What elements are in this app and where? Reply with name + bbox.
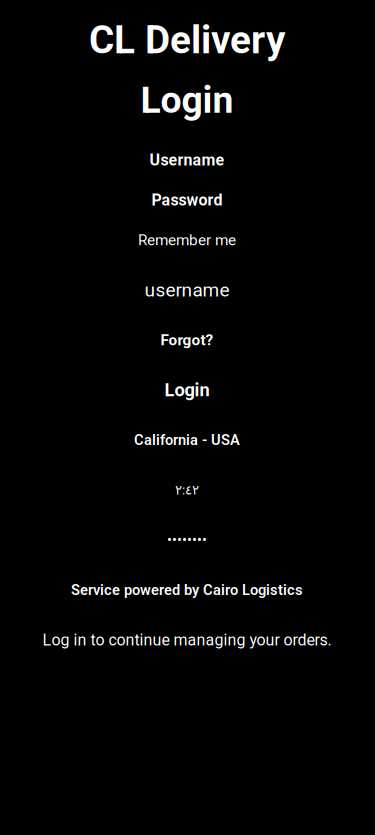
staticText: Login <box>140 78 233 122</box>
staticText: Forgot? <box>160 331 213 349</box>
staticText: Username <box>149 151 224 169</box>
staticText: CL Delivery <box>89 17 285 63</box>
staticText: •••••••• <box>167 531 207 549</box>
staticText: Remember me <box>138 231 236 249</box>
staticText: ٢:٤٢ <box>175 482 199 498</box>
staticText: Service powered by Cairo Logistics <box>71 581 303 599</box>
staticText: Password <box>151 191 222 209</box>
staticText: Log in to continue managing your orders. <box>42 631 331 649</box>
staticText: California - USA <box>134 431 240 449</box>
staticText: Login <box>164 379 209 401</box>
staticText: username <box>144 279 229 301</box>
